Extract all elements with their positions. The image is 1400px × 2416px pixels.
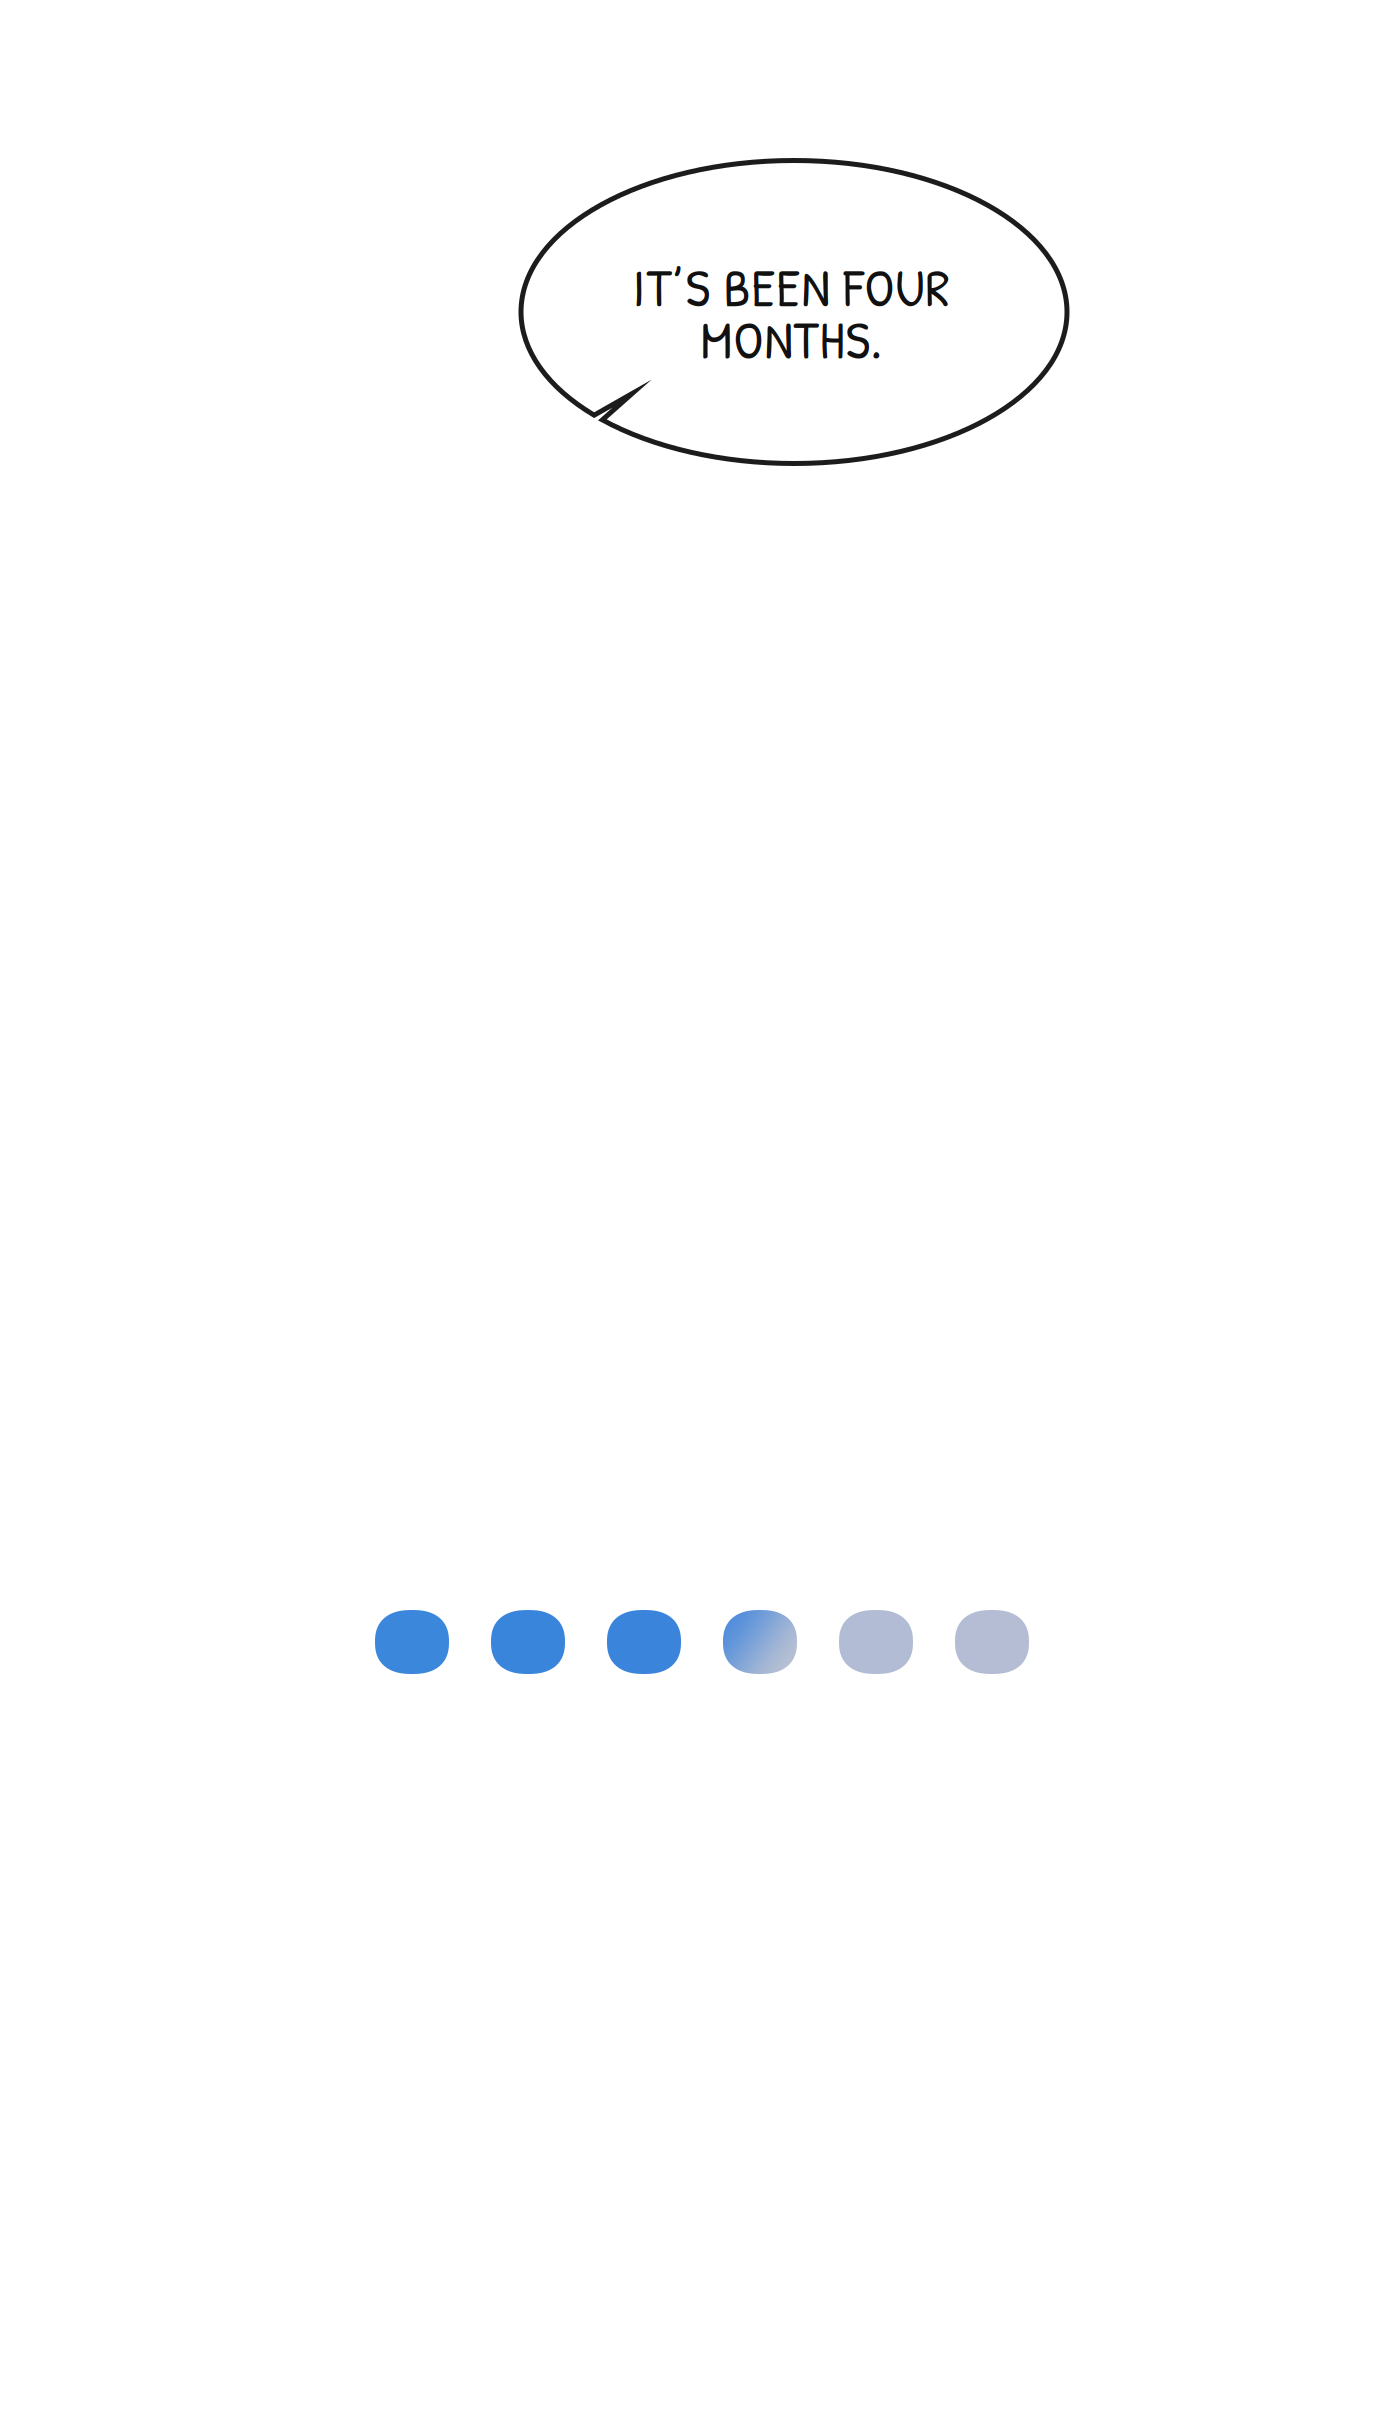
staticText: IT’S BEEN FOUR MONTHS. xyxy=(631,251,948,375)
